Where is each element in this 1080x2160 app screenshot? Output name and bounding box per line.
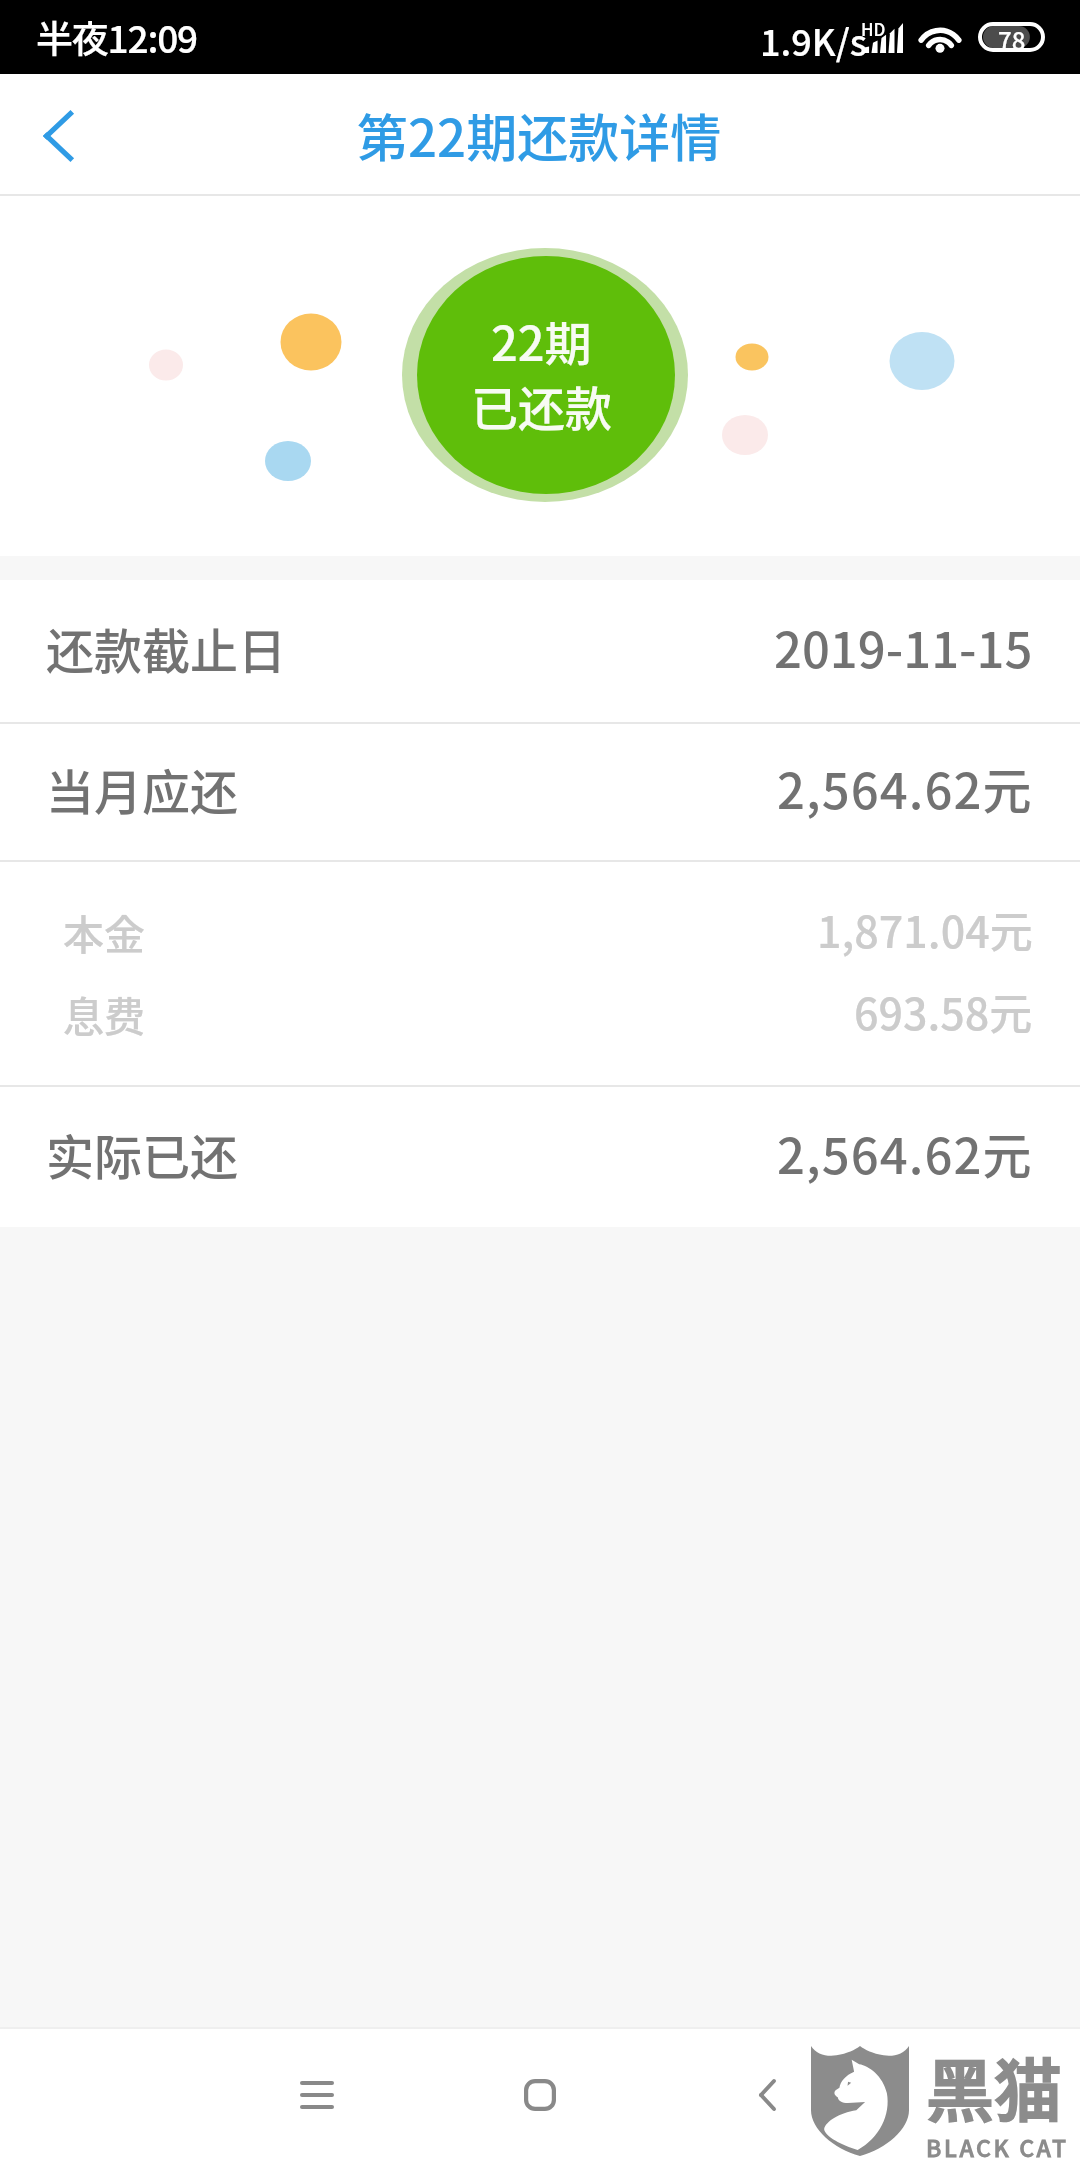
staticText: 22期 <box>491 306 592 374</box>
button[interactable]: 还款截止日 <box>0 580 1080 722</box>
staticText: BLACK CAT <box>926 2130 1069 2160</box>
button[interactable]: 实际已还 <box>0 1087 1080 1227</box>
staticText: 2019-11-15 <box>774 611 1033 682</box>
staticText: 第22期还款详情 <box>357 98 722 172</box>
button[interactable]: 当月应还 <box>0 724 1080 860</box>
staticText: 息费 <box>63 984 145 1043</box>
button[interactable]: Home <box>474 2029 606 2160</box>
button[interactable]: Back <box>701 2029 833 2160</box>
staticText: HD <box>861 16 886 41</box>
button[interactable]: Recents <box>251 2029 383 2160</box>
button[interactable]: Back <box>0 74 130 194</box>
staticText: 黑猫 <box>926 2037 1063 2135</box>
staticText: 78 <box>998 22 1026 52</box>
staticText: 当月应还 <box>46 754 239 824</box>
staticText: 还款截止日 <box>46 613 287 683</box>
staticText: 半夜12:09 <box>36 10 197 64</box>
staticText: 1.9K/s <box>760 14 867 66</box>
staticText: 1,871.04元 <box>817 898 1033 960</box>
staticText: 2,564.62元 <box>777 1117 1033 1188</box>
staticText: 实际已还 <box>46 1119 239 1189</box>
staticText: 已还款 <box>471 371 612 439</box>
staticText: 本金 <box>63 902 145 961</box>
staticText: 2,564.62元 <box>777 752 1033 823</box>
staticText: 693.58元 <box>854 980 1033 1042</box>
